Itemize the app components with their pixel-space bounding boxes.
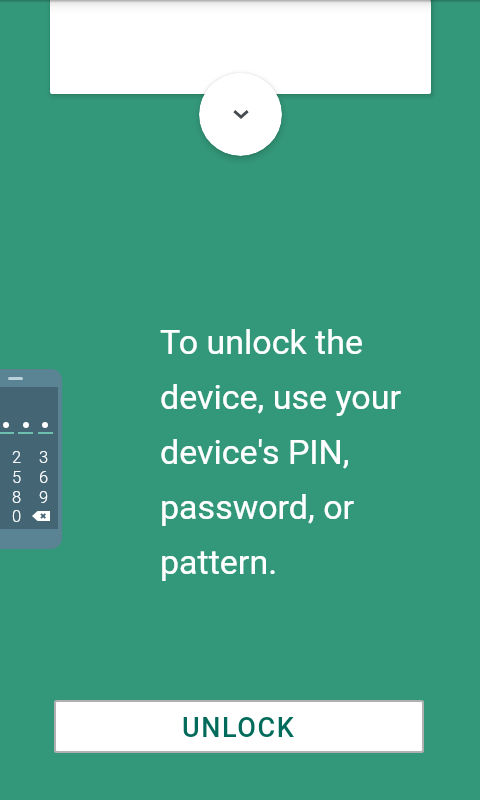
staticText: 8 — [12, 488, 22, 507]
button[interactable]: UNLOCK — [56, 702, 422, 751]
staticText: 5 — [12, 468, 22, 487]
staticText: 0 — [12, 507, 22, 526]
staticText: UNLOCK — [182, 712, 296, 744]
staticText: 2 — [12, 448, 22, 467]
staticText: 3 — [39, 448, 49, 467]
staticText: 6 — [39, 468, 49, 487]
button[interactable]: Expand — [199, 73, 282, 156]
staticText: 9 — [39, 488, 49, 507]
staticText: To unlock the device, use your device's … — [160, 322, 408, 582]
